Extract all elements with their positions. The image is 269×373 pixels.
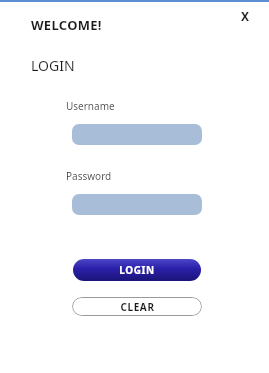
button[interactable]: LOGIN — [73, 259, 201, 281]
button[interactable] — [72, 124, 202, 145]
staticText: WELCOME! — [31, 16, 102, 34]
staticText: Password — [66, 169, 112, 183]
staticText: LOGIN — [31, 56, 75, 75]
staticText: X — [241, 8, 250, 24]
button[interactable] — [72, 194, 202, 215]
staticText: Username — [66, 99, 115, 113]
button[interactable]: Close — [235, 6, 255, 26]
staticText: LOGIN — [119, 263, 155, 277]
button[interactable]: CLEAR — [72, 297, 202, 316]
staticText: CLEAR — [120, 300, 155, 314]
